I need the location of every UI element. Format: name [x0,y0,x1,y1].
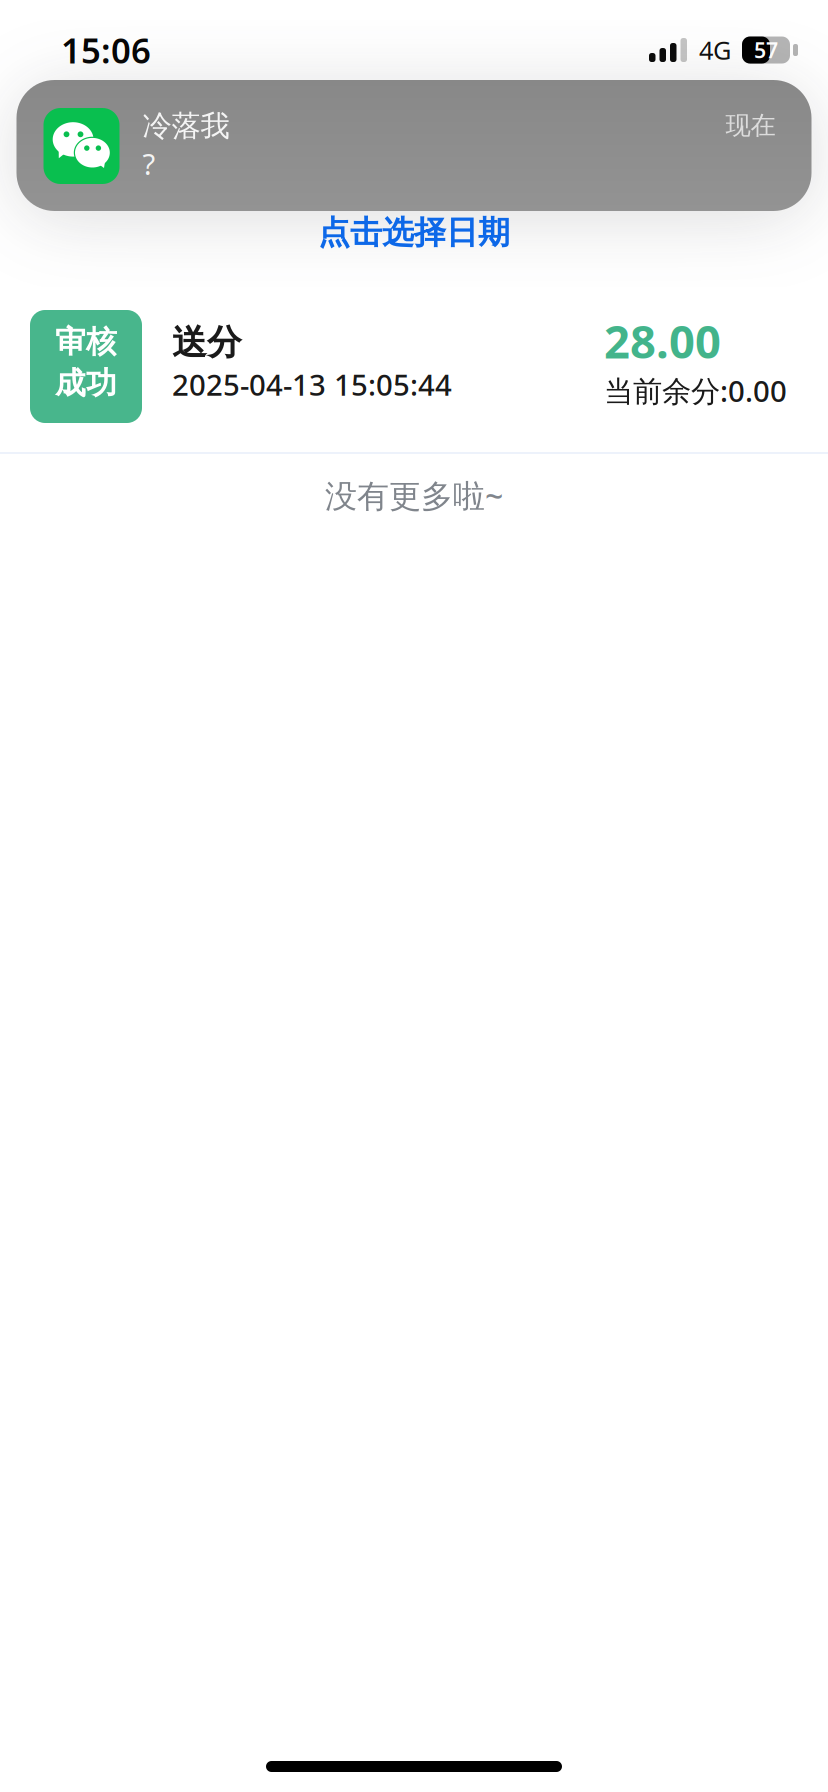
button[interactable]: 点击选择日期 [0,211,828,265]
staticText: 没有更多啦~ [325,474,503,516]
staticText: 成功 [55,364,117,402]
staticText: 2025-04-13 15:05:44 [172,365,452,404]
staticText: 4G [699,33,731,67]
button[interactable]: 冷落我 [16,80,811,211]
staticText: 点击选择日期 [318,213,510,252]
staticText: ? [142,144,155,183]
staticText: 送分 [172,321,242,364]
staticText: 28.00 [604,311,721,371]
staticText: 57 [754,36,778,64]
staticText: 15:06 [61,27,151,73]
staticText: 审核 [55,323,117,360]
staticText: 现在 [725,110,775,141]
staticText: 当前余分:0.00 [604,371,787,410]
staticText: 冷落我 [142,108,229,144]
button[interactable]: 审核 [0,281,828,452]
